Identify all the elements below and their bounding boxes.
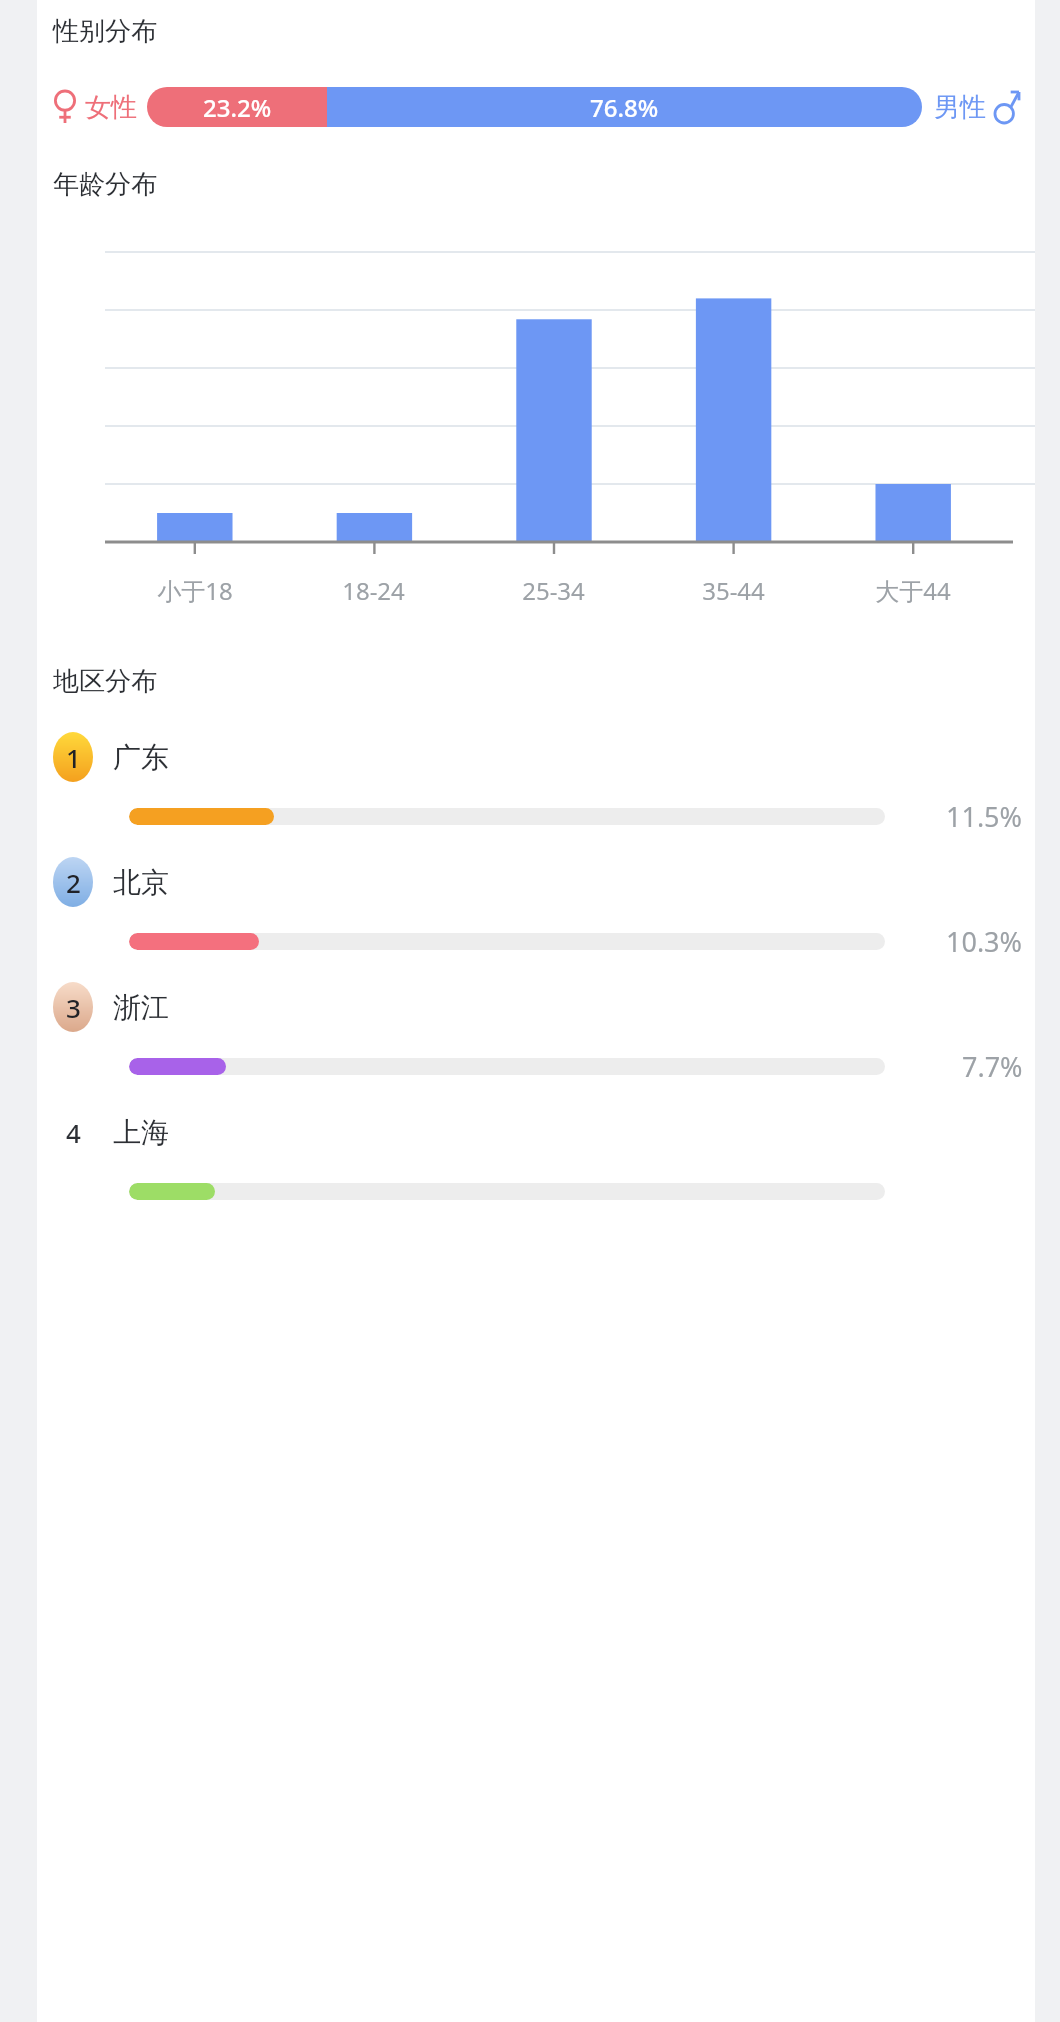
button[interactable]: 1: [37, 732, 1035, 835]
staticText: 4: [66, 1115, 81, 1150]
staticText: 23.2%: [203, 91, 272, 124]
staticText: 3: [66, 990, 81, 1025]
other: Male: [993, 89, 1021, 125]
staticText: 上海: [113, 1115, 169, 1150]
staticText: 1: [66, 740, 81, 775]
staticText: 7.7%: [962, 1048, 1023, 1085]
staticText: 女性: [85, 91, 137, 124]
staticText: 35-44: [702, 574, 765, 607]
staticText: 大于44: [875, 574, 951, 607]
staticText: 性别分布: [53, 15, 157, 48]
other: Female: [53, 89, 77, 125]
staticText: 11.5%: [946, 798, 1023, 835]
staticText: 76.8%: [590, 91, 659, 124]
button[interactable]: 2: [37, 857, 1035, 960]
button[interactable]: 3: [37, 982, 1035, 1085]
staticText: 浙江: [113, 990, 169, 1025]
button[interactable]: 4: [37, 1107, 1035, 1210]
staticText: 年龄分布: [53, 168, 157, 201]
staticText: 2: [66, 865, 81, 900]
staticText: 10.3%: [946, 923, 1023, 960]
button[interactable]: Female: [37, 85, 1035, 129]
staticText: 男性: [934, 91, 986, 124]
staticText: 北京: [113, 865, 169, 900]
staticText: 18-24: [342, 574, 405, 607]
staticText: 25-34: [522, 574, 585, 607]
staticText: 广东: [113, 740, 169, 775]
staticText: 地区分布: [53, 665, 157, 698]
staticText: 小于18: [157, 574, 233, 607]
